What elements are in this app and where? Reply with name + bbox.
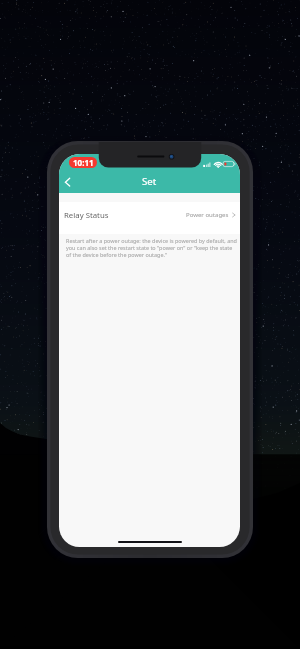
staticText: 10:11 [73,157,94,168]
button[interactable]: Relay Status [59,202,240,234]
button[interactable]: Back [59,171,81,193]
staticText: Set [142,175,157,188]
staticText: Restart after a power outage: the device… [66,237,238,258]
staticText: Relay Status [64,210,109,221]
staticText: Power outages [186,211,229,219]
